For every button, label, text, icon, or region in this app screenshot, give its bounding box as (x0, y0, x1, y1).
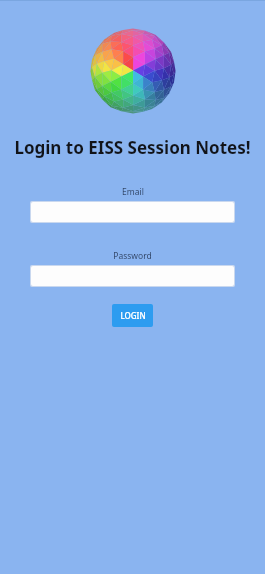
button[interactable]: LOGIN (112, 304, 153, 327)
staticText: Email (122, 186, 144, 198)
staticText: Login to EISS Session Notes! (14, 136, 251, 159)
staticText: LOGIN (120, 310, 146, 321)
staticText: Password (113, 250, 152, 262)
